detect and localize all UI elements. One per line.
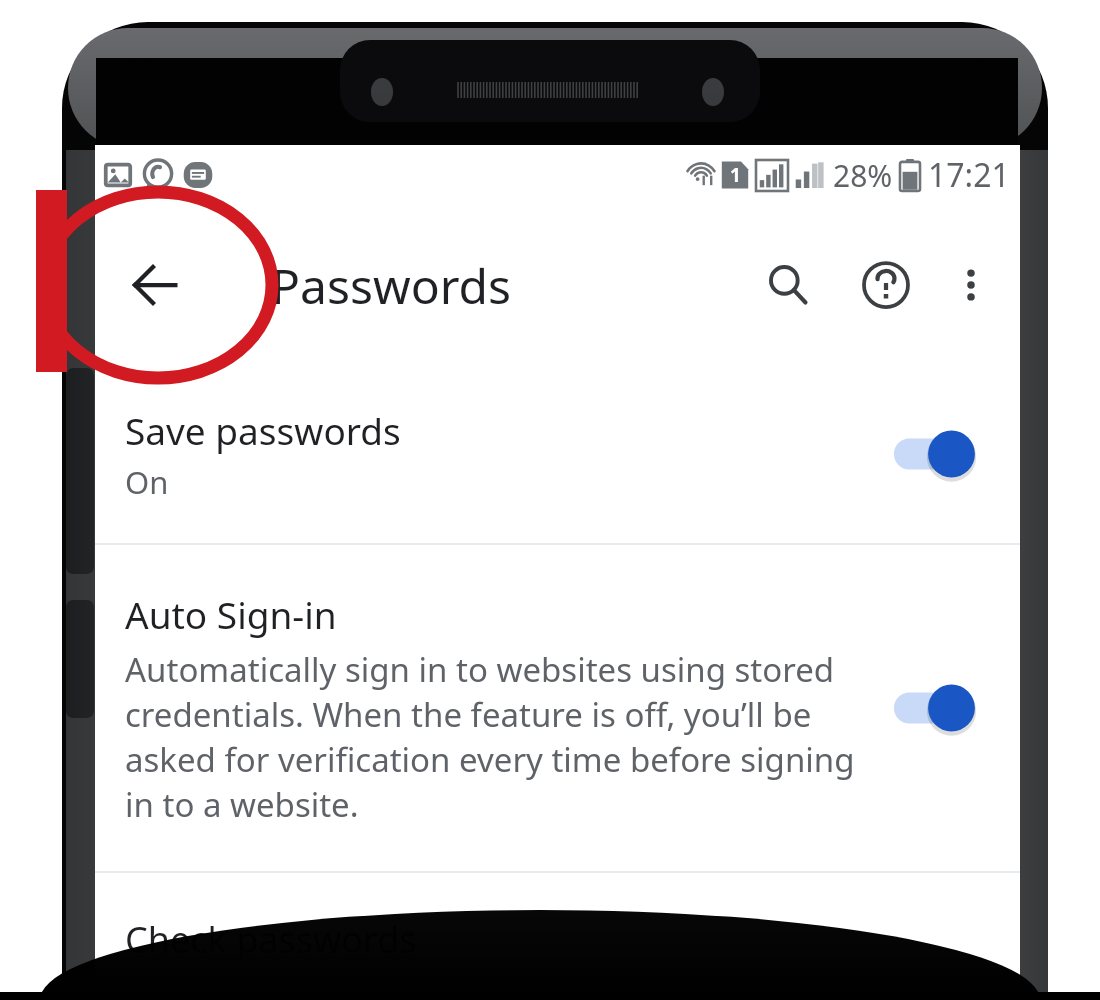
staticText: Auto Sign-in bbox=[125, 589, 337, 639]
button[interactable]: Search bbox=[748, 245, 828, 325]
staticText: Check passwords bbox=[125, 915, 417, 964]
staticText: Save passwords bbox=[125, 405, 401, 455]
staticText: Automatically sign in to websites using … bbox=[125, 647, 874, 827]
staticText: 17:21 bbox=[928, 153, 1010, 197]
button[interactable]: Save passwords bbox=[95, 365, 1020, 543]
staticText: 1 bbox=[730, 162, 741, 188]
staticText: Passwords bbox=[271, 253, 512, 318]
staticText: 28% bbox=[833, 155, 893, 196]
button[interactable]: Auto Sign-in bbox=[95, 545, 1020, 871]
button[interactable]: Help bbox=[846, 245, 926, 325]
button[interactable]: Navigate up bbox=[113, 242, 199, 328]
staticText: On bbox=[125, 461, 169, 503]
button[interactable]: More options bbox=[936, 250, 1006, 320]
